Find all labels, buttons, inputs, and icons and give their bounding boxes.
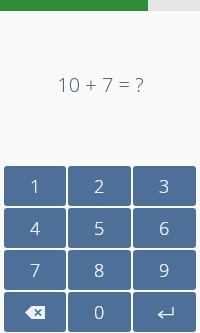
button[interactable]: 8 (68, 250, 131, 290)
staticText: 4 (30, 216, 41, 241)
button[interactable]: 0 (68, 292, 131, 332)
staticText: 1 (30, 174, 41, 199)
button[interactable]: 1 (4, 166, 66, 206)
staticText: 5 (94, 216, 105, 241)
button[interactable]: 4 (4, 208, 66, 248)
button[interactable]: 3 (133, 166, 196, 206)
button[interactable]: Backspace (4, 292, 66, 332)
staticText: 8 (94, 258, 105, 283)
button[interactable]: 2 (68, 166, 131, 206)
staticText: 2 (94, 174, 105, 199)
button[interactable]: 5 (68, 208, 131, 248)
button[interactable]: 7 (4, 250, 66, 290)
button[interactable]: 9 (133, 250, 196, 290)
staticText: 10 + 7 = ? (57, 71, 144, 98)
staticText: 0 (94, 300, 105, 325)
staticText: 3 (159, 174, 170, 199)
staticText: 7 (30, 258, 41, 283)
button[interactable]: 6 (133, 208, 196, 248)
button[interactable]: Enter (133, 292, 196, 332)
staticText: 9 (159, 258, 170, 283)
staticText: 6 (159, 216, 170, 241)
